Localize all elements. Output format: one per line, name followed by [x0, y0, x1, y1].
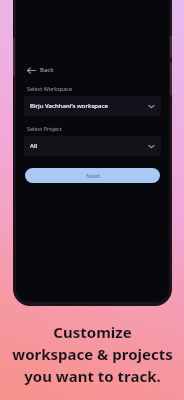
staticText: Back — [40, 66, 54, 74]
staticText: workspace & projects — [12, 344, 173, 364]
button[interactable]: Back — [24, 64, 57, 76]
staticText: Next — [86, 172, 100, 180]
button[interactable]: All — [24, 136, 161, 156]
staticText: Select Project — [27, 125, 62, 132]
staticText: Select Workspace — [27, 85, 73, 92]
staticText: you want to track. — [24, 366, 161, 386]
button[interactable]: Birju Vachhani's workspace — [24, 96, 161, 116]
staticText: Customize — [53, 322, 132, 342]
staticText: Birju Vachhani's workspace — [30, 102, 148, 110]
button[interactable]: Next — [25, 168, 160, 183]
staticText: All — [30, 142, 148, 150]
